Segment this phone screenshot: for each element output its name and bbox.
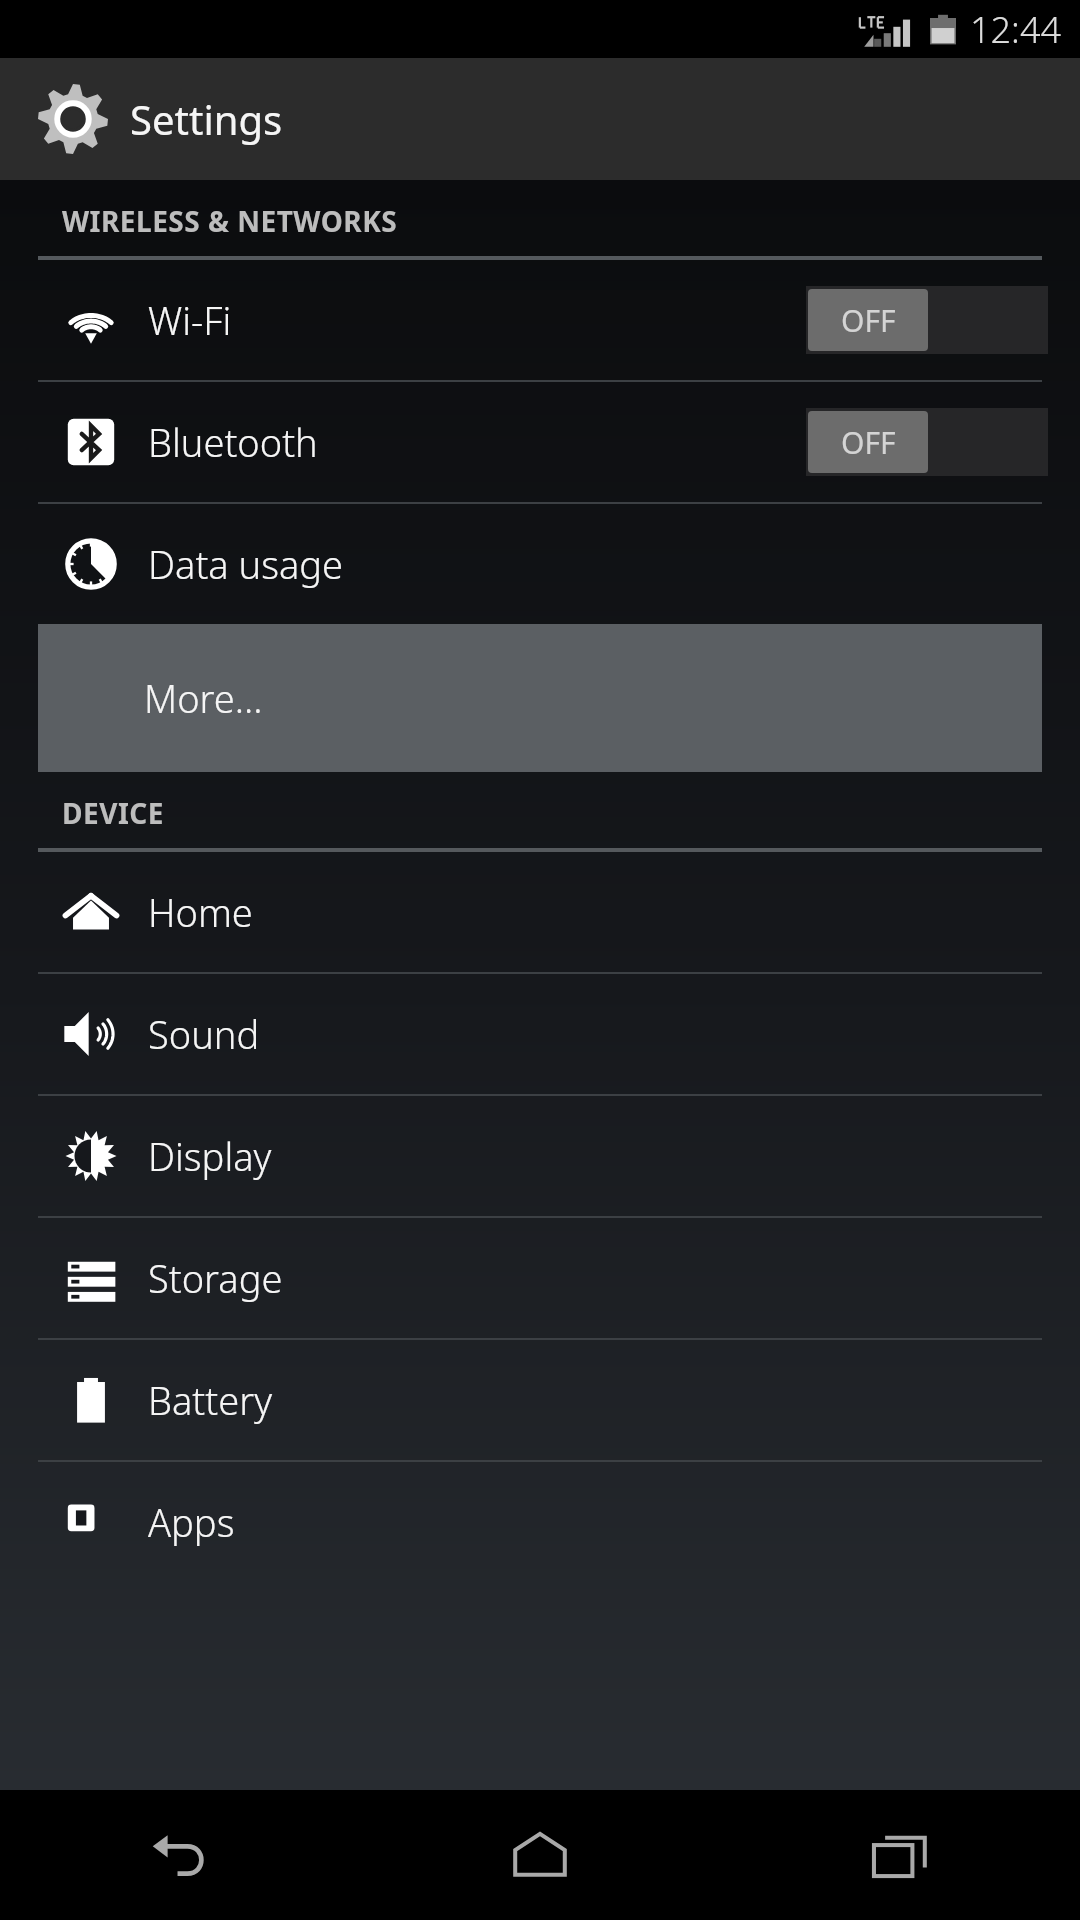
staticText: Wi-Fi: [148, 294, 232, 346]
staticText: Apps: [148, 1496, 235, 1548]
staticText: WIRELESS & NETWORKS: [62, 202, 398, 240]
button[interactable]: Bluetooth: [0, 382, 1080, 502]
staticText: Home: [148, 886, 253, 938]
button[interactable]: Wi-Fi: [0, 260, 1080, 380]
staticText: Bluetooth: [148, 416, 318, 468]
button[interactable]: Back: [0, 1790, 360, 1920]
button[interactable]: OFF: [806, 286, 1048, 354]
button[interactable]: Recent apps: [720, 1790, 1080, 1920]
button[interactable]: Data usage: [0, 504, 1080, 624]
button[interactable]: Apps: [0, 1462, 1080, 1582]
staticText: Storage: [148, 1252, 283, 1304]
button[interactable]: Storage: [0, 1218, 1080, 1338]
button[interactable]: OFF: [806, 408, 1048, 476]
staticText: More...: [144, 672, 263, 724]
staticText: Battery: [148, 1374, 272, 1426]
staticText: OFF: [841, 300, 896, 341]
button[interactable]: Home: [360, 1790, 720, 1920]
button[interactable]: Battery: [0, 1340, 1080, 1460]
button[interactable]: Home: [0, 852, 1080, 972]
staticText: OFF: [841, 422, 896, 463]
staticText: Settings: [130, 92, 283, 146]
button[interactable]: Display: [0, 1096, 1080, 1216]
staticText: DEVICE: [62, 794, 164, 832]
staticText: Data usage: [148, 538, 344, 590]
button[interactable]: More...: [38, 624, 1042, 772]
button[interactable]: Sound: [0, 974, 1080, 1094]
staticText: Sound: [148, 1008, 260, 1060]
staticText: 12:44: [970, 5, 1062, 54]
staticText: Display: [148, 1130, 272, 1182]
